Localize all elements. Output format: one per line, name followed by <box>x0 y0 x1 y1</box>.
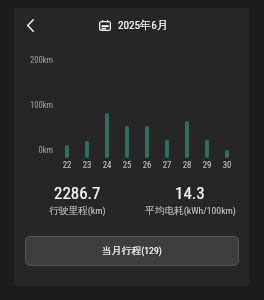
staticText: 24 <box>99 160 115 170</box>
button[interactable]: Back <box>17 12 43 38</box>
button[interactable]: 当月行程(129) <box>25 236 239 266</box>
staticText: 23 <box>79 160 95 170</box>
staticText: 22 <box>59 160 75 170</box>
staticText: 14.3 <box>175 183 205 203</box>
staticText: 25 <box>119 160 135 170</box>
staticText: 0km <box>16 145 53 155</box>
staticText: 行驶里程(km) <box>49 205 106 217</box>
staticText: 2025年6月 <box>118 18 168 32</box>
staticText: 平均电耗(kWh/100km) <box>145 205 236 217</box>
staticText: 26 <box>139 160 155 170</box>
staticText: 100km <box>16 100 53 110</box>
staticText: 28 <box>179 160 195 170</box>
staticText: 30 <box>219 160 235 170</box>
staticText: 2286.7 <box>54 183 101 203</box>
staticText: 200km <box>16 55 53 65</box>
staticText: 27 <box>159 160 175 170</box>
staticText: 当月行程(129) <box>102 245 162 257</box>
button[interactable]: 2025年6月 <box>99 17 168 33</box>
staticText: 29 <box>199 160 215 170</box>
